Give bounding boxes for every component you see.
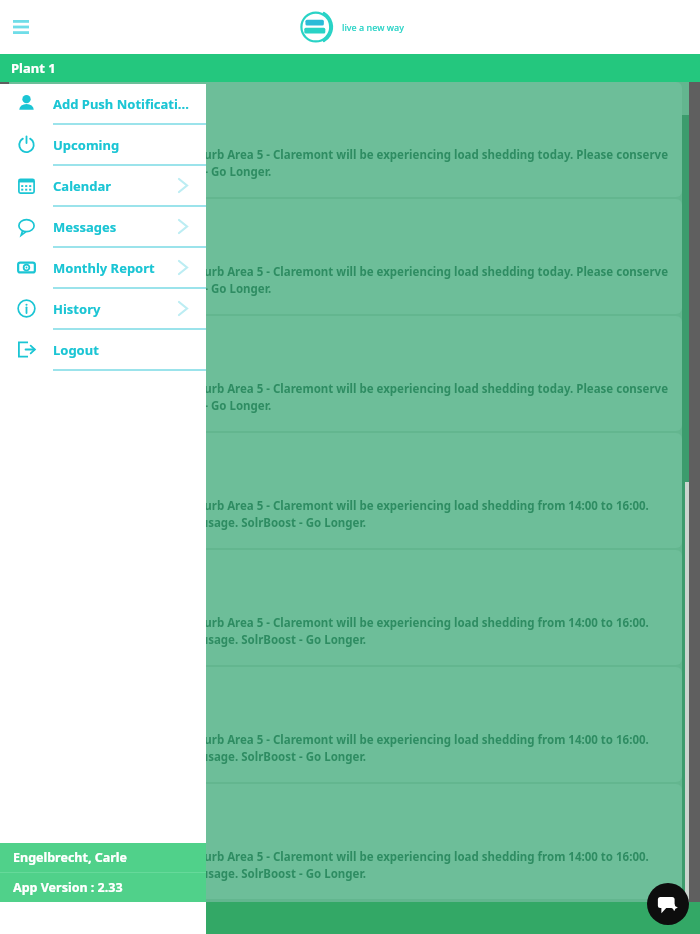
button[interactable]: Your plant (Plant) situated in suburb Ar… [6, 199, 682, 314]
button[interactable]: Your plant (Plant) situated in suburb Ar… [6, 784, 682, 899]
staticText: Calendar [53, 177, 179, 195]
staticText: History [53, 300, 179, 318]
button[interactable]: Messages [0, 207, 206, 248]
button[interactable]: Open navigation menu [4, 10, 38, 44]
button[interactable]: Add Push Notificati... [0, 84, 206, 125]
staticText: Your plant (Plant) situated in suburb Ar… [16, 147, 672, 179]
button[interactable]: Logout [0, 330, 206, 371]
button[interactable]: Upcoming [0, 125, 206, 166]
staticText: Logout [53, 341, 206, 359]
button[interactable]: Your plant (Plant) situated in suburb Ar… [6, 550, 682, 665]
staticText: Messages [53, 218, 179, 236]
staticText: Your plant (Plant) situated in suburb Ar… [16, 732, 672, 764]
button[interactable]: Your plant (Plant) situated in suburb Ar… [6, 316, 682, 431]
button[interactable]: Your plant (Plant) situated in suburb Ar… [6, 433, 682, 548]
staticText: Add Push Notificati... [53, 95, 206, 113]
button[interactable]: History [0, 289, 206, 330]
button[interactable]: Open AI chat assistant [647, 883, 689, 925]
staticText: live a new way [342, 21, 404, 33]
staticText: App Version : 2.33 [13, 879, 123, 896]
button[interactable]: Your plant (Plant) situated in suburb Ar… [6, 667, 682, 782]
staticText: Plant 1 [11, 59, 56, 77]
staticText: Upcoming [53, 136, 206, 154]
button[interactable]: Your plant (Plant) situated in suburb Ar… [6, 82, 682, 197]
staticText: Monthly Report [53, 259, 179, 277]
button[interactable]: Engelbrecht, Carle [0, 843, 206, 872]
button[interactable]: Monthly Report [0, 248, 206, 289]
button[interactable]: Calendar [0, 166, 206, 207]
staticText: Your plant (Plant) situated in suburb Ar… [16, 264, 672, 296]
staticText: Your plant (Plant) situated in suburb Ar… [16, 615, 672, 647]
staticText: Your plant (Plant) situated in suburb Ar… [16, 498, 672, 530]
staticText: Your plant (Plant) situated in suburb Ar… [16, 849, 672, 881]
staticText: Your plant (Plant) situated in suburb Ar… [16, 381, 672, 413]
staticText: Engelbrecht, Carle [13, 849, 128, 866]
